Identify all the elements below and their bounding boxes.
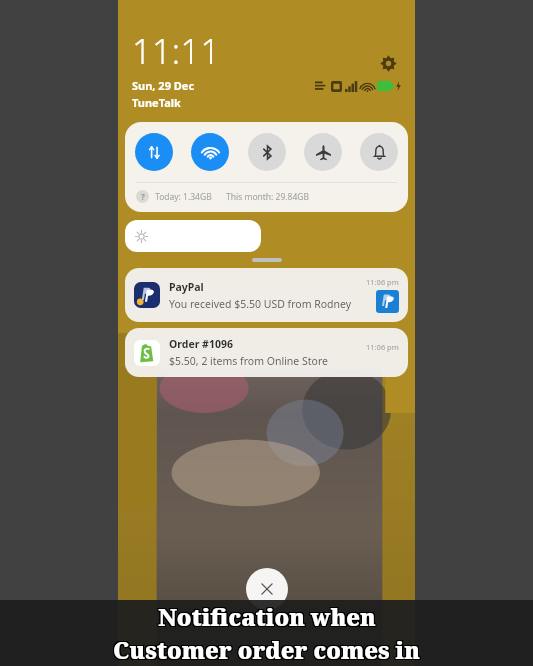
staticText: Customer order comes in — [114, 635, 421, 666]
staticText: Today: 1.34GB — [155, 191, 212, 203]
staticText: Customer order comes in — [112, 633, 419, 664]
button[interactable]: Ring mode — [360, 133, 398, 171]
staticText: Customer order comes in — [114, 633, 421, 664]
staticText: Notification when — [158, 602, 376, 633]
staticText: Notification when — [159, 602, 377, 633]
staticText: Notification when — [157, 602, 375, 633]
staticText: Notification when — [159, 600, 377, 631]
staticText: Notification when — [159, 602, 377, 633]
button[interactable]: PayPal — [125, 268, 408, 322]
staticText: Notification when — [159, 602, 377, 633]
staticText: Customer order comes in — [113, 634, 420, 665]
button[interactable]: Order #1096 — [125, 328, 408, 377]
staticText: Sun, 29 Dec — [132, 78, 195, 93]
staticText: Customer order comes in — [114, 634, 421, 665]
staticText: ? — [141, 191, 145, 202]
staticText: 11:11 — [132, 28, 221, 74]
staticText: Notification when — [157, 602, 375, 633]
staticText: Customer order comes in — [113, 635, 420, 666]
staticText: Customer order comes in — [112, 633, 419, 664]
staticText: Notification when — [157, 602, 375, 633]
staticText: Customer order comes in — [114, 634, 421, 665]
button[interactable]: Wi-Fi — [191, 133, 229, 171]
staticText: Customer order comes in — [112, 633, 419, 664]
button[interactable]: Close — [246, 568, 288, 610]
staticText: Customer order comes in — [114, 633, 421, 664]
staticText: Notification when — [158, 602, 376, 633]
staticText: $5.50, 2 items from Online Store — [169, 354, 328, 368]
staticText: Notification when — [157, 600, 375, 631]
staticText: Notification when — [158, 601, 376, 632]
button[interactable]: Airplane mode — [304, 133, 342, 171]
staticText: Customer order comes in — [113, 633, 420, 664]
staticText: Notification when — [158, 600, 376, 631]
staticText: Customer order comes in — [112, 635, 419, 666]
button[interactable]: Settings — [375, 50, 401, 76]
staticText: Customer order comes in — [112, 633, 419, 664]
staticText: Notification when — [158, 600, 376, 631]
staticText: 11:06 pm — [366, 342, 399, 352]
button[interactable]: Bluetooth — [248, 133, 286, 171]
staticText: Notification when — [159, 600, 377, 631]
staticText: This month: 29.84GB — [226, 191, 310, 203]
staticText: Notification when — [157, 600, 375, 631]
staticText: Customer order comes in — [112, 635, 419, 666]
staticText: Customer order comes in — [112, 634, 419, 665]
staticText: Customer order comes in — [112, 634, 419, 665]
staticText: Customer order comes in — [113, 635, 420, 666]
staticText: Notification when — [159, 600, 377, 631]
staticText: 11:06 pm — [366, 277, 399, 287]
staticText: Customer order comes in — [114, 633, 421, 664]
staticText: PayPal — [169, 280, 204, 294]
button[interactable]: Brightness — [125, 220, 261, 252]
staticText: Notification when — [159, 602, 377, 633]
staticText: Customer order comes in — [112, 635, 419, 666]
staticText: Notification when — [159, 601, 377, 632]
staticText: Order #1096 — [169, 337, 233, 351]
staticText: Customer order comes in — [114, 635, 421, 666]
staticText: Notification when — [157, 600, 375, 631]
staticText: Notification when — [157, 601, 375, 632]
staticText: Customer order comes in — [114, 635, 421, 666]
staticText: Notification when — [159, 600, 377, 631]
staticText: Customer order comes in — [112, 635, 419, 666]
button[interactable]: Mobile data — [135, 133, 173, 171]
staticText: Notification when — [159, 601, 377, 632]
staticText: Notification when — [157, 600, 375, 631]
staticText: Customer order comes in — [114, 633, 421, 664]
staticText: TuneTalk — [132, 95, 181, 110]
staticText: Notification when — [157, 602, 375, 633]
staticText: Customer order comes in — [114, 635, 421, 666]
staticText: You received $5.50 USD from Rodney — [169, 297, 352, 311]
staticText: Customer order comes in — [113, 633, 420, 664]
staticText: Notification when — [157, 601, 375, 632]
